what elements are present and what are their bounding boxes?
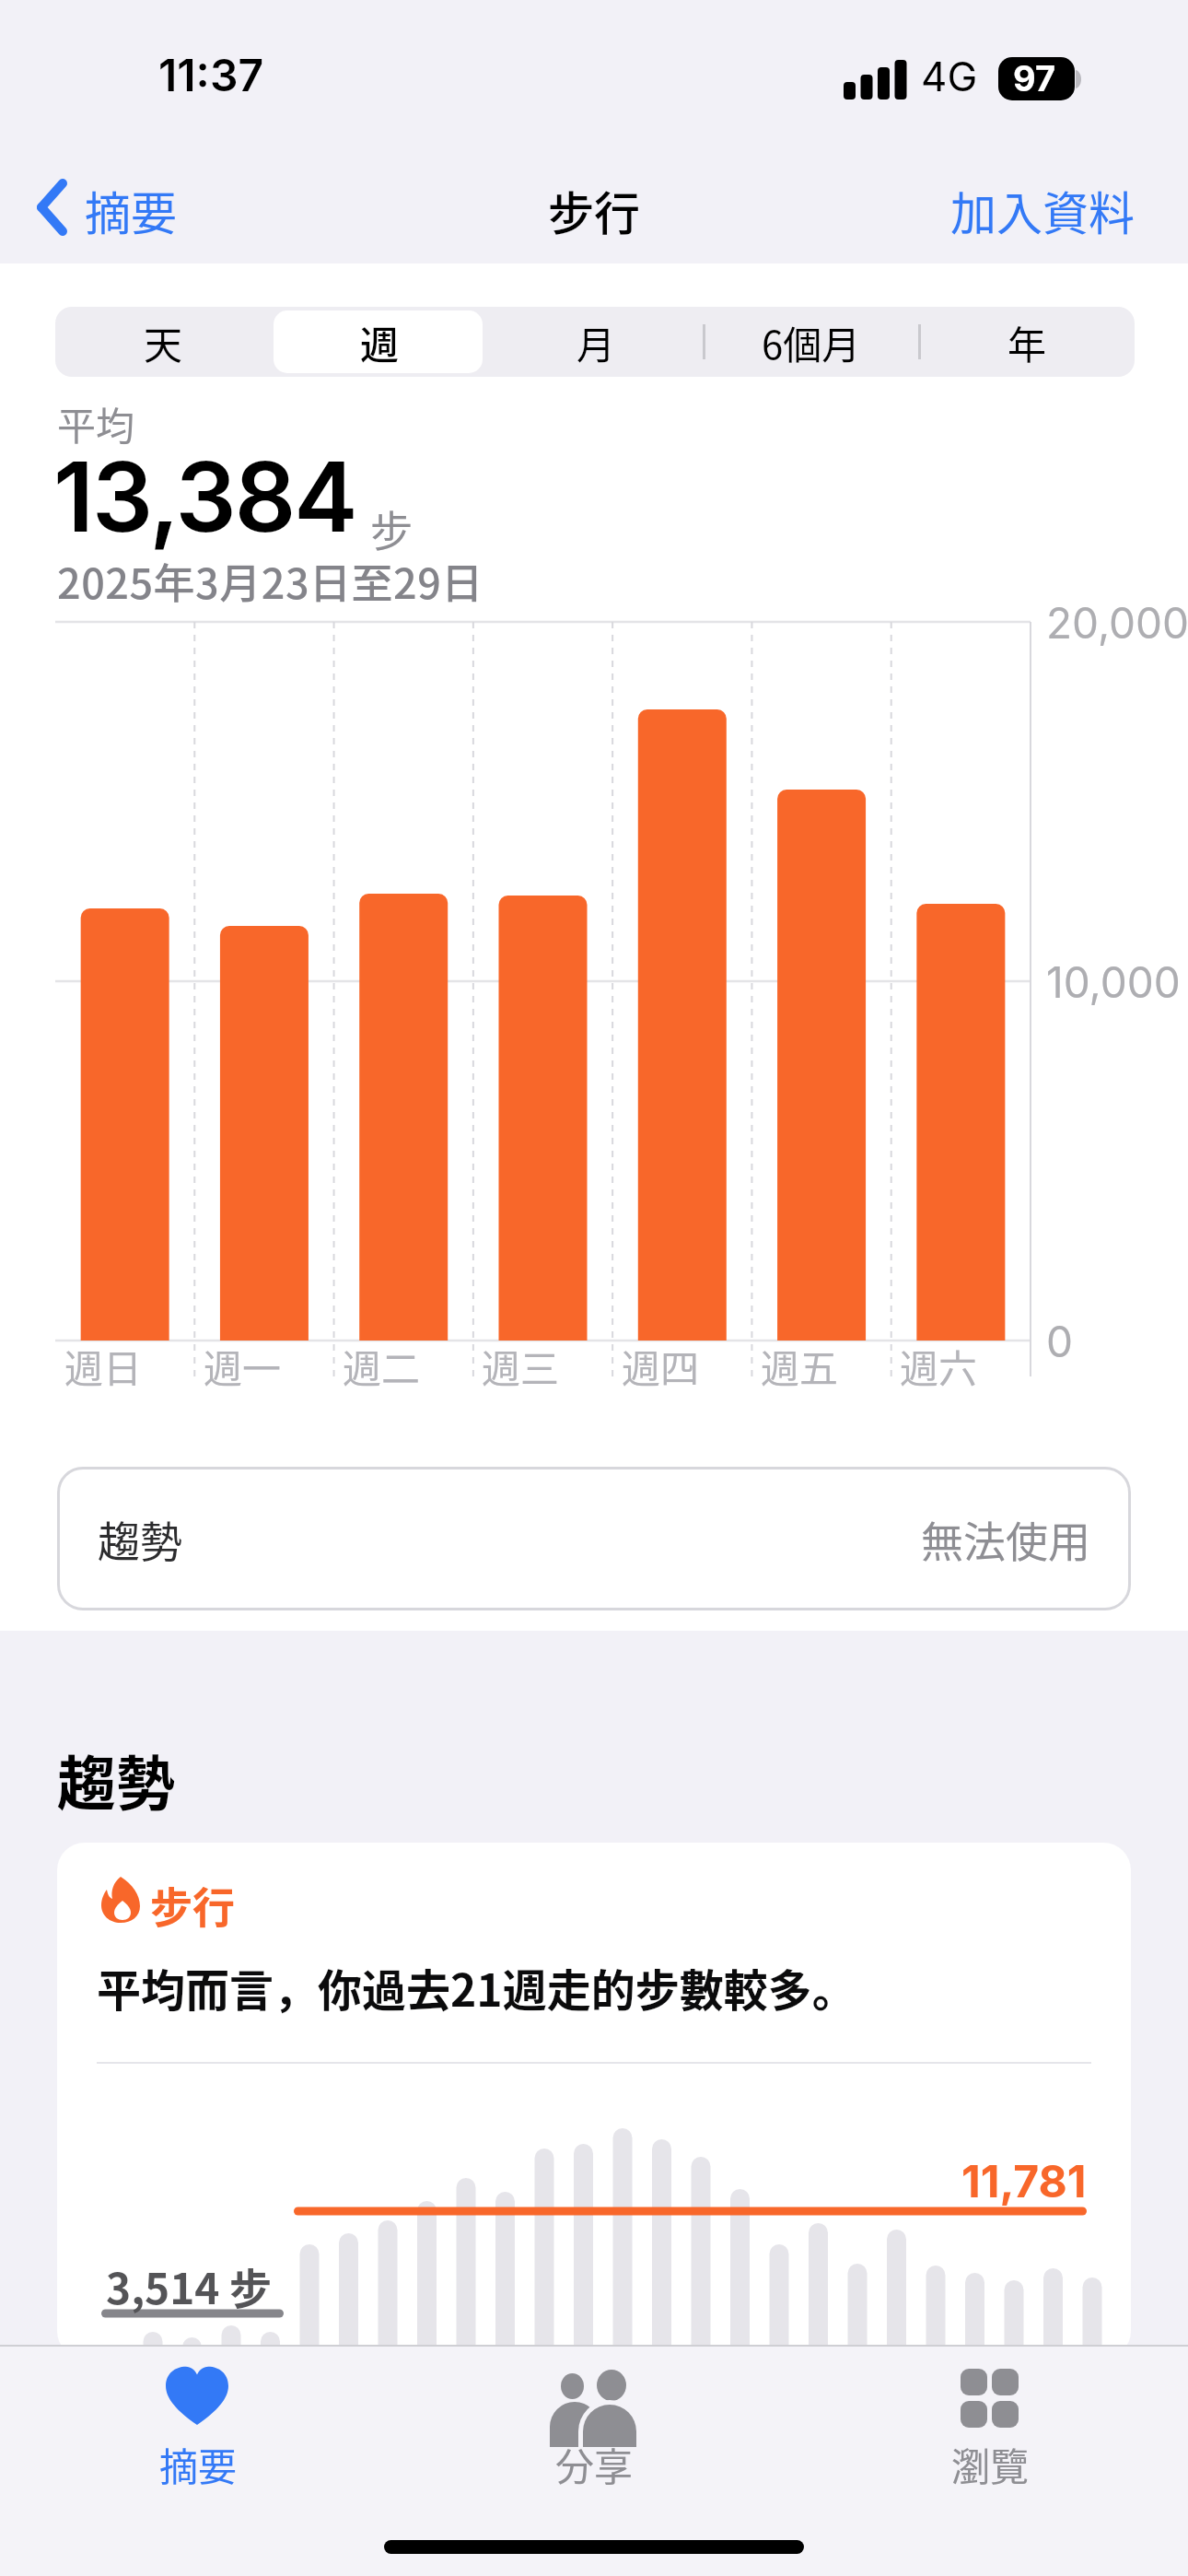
staticText: 週二 xyxy=(343,1338,421,1394)
staticText: 20,000 xyxy=(1046,597,1188,649)
staticText: 摘要 xyxy=(85,177,177,243)
staticText: 加入資料 xyxy=(950,177,1135,243)
button[interactable]: 月 xyxy=(488,307,704,377)
staticText: 步行 xyxy=(548,177,640,243)
button[interactable]: 週 xyxy=(272,307,488,377)
button[interactable]: 年 xyxy=(919,307,1135,377)
staticText: 3,514 步 xyxy=(106,2255,272,2317)
staticText: 週日 xyxy=(64,1338,143,1394)
staticText: 無法使用 xyxy=(921,1508,1090,1570)
staticText: 平均 xyxy=(57,395,135,451)
staticText: 週一 xyxy=(204,1338,282,1394)
button[interactable] xyxy=(32,2345,364,2529)
staticText: 11,781 xyxy=(961,2154,1087,2207)
staticText: 趨勢 xyxy=(57,1737,175,1822)
button[interactable]: 天 xyxy=(55,307,272,377)
staticText: 週五 xyxy=(761,1338,839,1394)
staticText: 摘要 xyxy=(159,2436,238,2492)
button[interactable]: 摘要 xyxy=(85,177,177,243)
button[interactable]: 6個月 xyxy=(704,307,919,377)
staticText: 步 xyxy=(370,498,413,559)
staticText: 6個月 xyxy=(762,314,861,370)
staticText: 月 xyxy=(577,314,616,370)
button[interactable] xyxy=(824,2345,1156,2529)
staticText: 2025年3月23日至29日 xyxy=(57,551,483,611)
staticText: 平均而言，你過去21週走的步數較多。 xyxy=(97,1955,856,2020)
staticText: 10,000 xyxy=(1046,956,1181,1008)
staticText: 4G xyxy=(921,52,978,100)
staticText: 週六 xyxy=(900,1338,978,1394)
staticText: 分享 xyxy=(555,2436,634,2492)
button[interactable] xyxy=(37,181,68,234)
staticText: 年 xyxy=(1007,314,1047,370)
button[interactable] xyxy=(428,2345,760,2529)
staticText: 週 xyxy=(360,314,400,370)
staticText: 97 xyxy=(1013,57,1056,100)
staticText: 週四 xyxy=(622,1338,700,1394)
staticText: 瀏覽 xyxy=(951,2436,1030,2492)
staticText: 13,384 xyxy=(53,439,356,555)
button[interactable]: 趨勢 xyxy=(57,1467,1131,1610)
button[interactable]: 加入資料 xyxy=(0,177,1135,243)
staticText: 0 xyxy=(1046,1316,1074,1367)
staticText: 週三 xyxy=(482,1338,560,1394)
staticText: 天 xyxy=(144,314,183,370)
staticText: 步行 xyxy=(150,1874,235,1936)
button[interactable]: 步行 xyxy=(57,1843,1131,2359)
staticText: 趨勢 xyxy=(98,1508,182,1570)
staticText: 11:37 xyxy=(158,48,264,101)
